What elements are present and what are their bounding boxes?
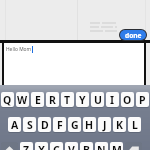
staticText: U	[94, 93, 102, 107]
button[interactable]: Q	[1, 92, 14, 108]
button[interactable]: G	[68, 117, 81, 133]
button[interactable]: F	[53, 117, 66, 133]
staticText: H	[85, 118, 94, 132]
button[interactable]: T	[61, 92, 74, 108]
staticText: O	[123, 93, 132, 107]
button[interactable]: C	[50, 142, 63, 150]
button[interactable]: X	[35, 142, 48, 150]
staticText: N	[97, 143, 106, 150]
staticText: D	[41, 118, 49, 132]
button[interactable]: H	[83, 117, 96, 133]
button[interactable]: Backspace	[125, 142, 142, 150]
button[interactable]: N	[95, 142, 108, 150]
staticText: C	[53, 143, 60, 150]
button[interactable]: E	[31, 92, 44, 108]
button[interactable]: V	[65, 142, 78, 150]
button[interactable]: R	[46, 92, 59, 108]
staticText: W	[17, 93, 28, 107]
staticText: L	[132, 118, 138, 132]
staticText: A	[11, 118, 19, 132]
staticText: Y	[79, 93, 86, 107]
staticText: E	[35, 93, 41, 107]
button[interactable]: J	[98, 117, 111, 133]
button[interactable]: B	[80, 142, 93, 150]
button[interactable]: L	[128, 117, 141, 133]
button[interactable]: D	[38, 117, 51, 133]
staticText: P	[139, 93, 146, 107]
staticText: T	[64, 93, 71, 107]
button[interactable]: O	[121, 92, 134, 108]
button[interactable]: K	[113, 117, 126, 133]
button[interactable]: Z	[20, 142, 33, 150]
button[interactable]: U	[91, 92, 104, 108]
staticText: M	[112, 143, 122, 150]
button[interactable]: I	[106, 92, 119, 108]
button[interactable]: S	[23, 117, 36, 133]
staticText: R	[49, 93, 56, 107]
staticText: Q	[3, 93, 12, 107]
staticText: V	[68, 143, 75, 150]
button[interactable]: W	[16, 92, 29, 108]
button[interactable]: done	[120, 30, 146, 40]
button[interactable]: P	[136, 92, 149, 108]
staticText: J	[103, 118, 107, 132]
staticText: X	[38, 143, 46, 150]
staticText: G	[71, 118, 79, 132]
button[interactable]: Y	[76, 92, 89, 108]
staticText: Z	[23, 143, 30, 150]
button[interactable]: A	[8, 117, 21, 133]
staticText: B	[83, 143, 90, 150]
staticText: F	[57, 118, 63, 132]
staticText: I	[110, 93, 115, 107]
button[interactable]: Shift	[1, 142, 18, 150]
staticText: Hello Mom	[6, 46, 32, 53]
staticText: S	[27, 118, 33, 132]
staticText: K	[116, 118, 123, 132]
staticText: done	[125, 31, 142, 40]
button[interactable]: M	[110, 142, 123, 150]
